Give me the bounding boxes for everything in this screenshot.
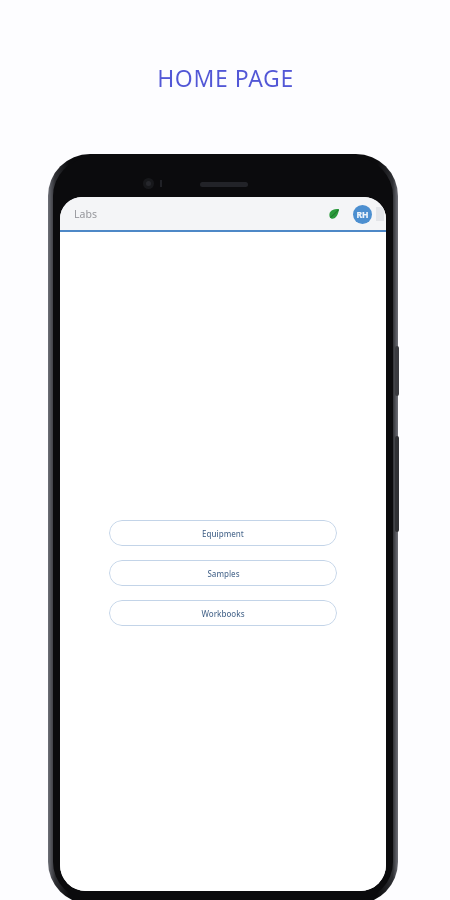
button[interactable]: Equipment — [109, 520, 337, 546]
staticText: Labs — [74, 207, 97, 221]
staticText: RH — [356, 209, 369, 221]
staticText: HOME PAGE — [157, 62, 294, 93]
button[interactable]: Eco mode — [323, 203, 345, 225]
staticText: Workbooks — [201, 608, 245, 619]
staticText: Samples — [207, 568, 240, 579]
button[interactable]: Samples — [109, 560, 337, 586]
button[interactable]: Account — [353, 205, 372, 224]
button[interactable]: Workbooks — [109, 600, 337, 626]
staticText: Equipment — [202, 528, 244, 539]
